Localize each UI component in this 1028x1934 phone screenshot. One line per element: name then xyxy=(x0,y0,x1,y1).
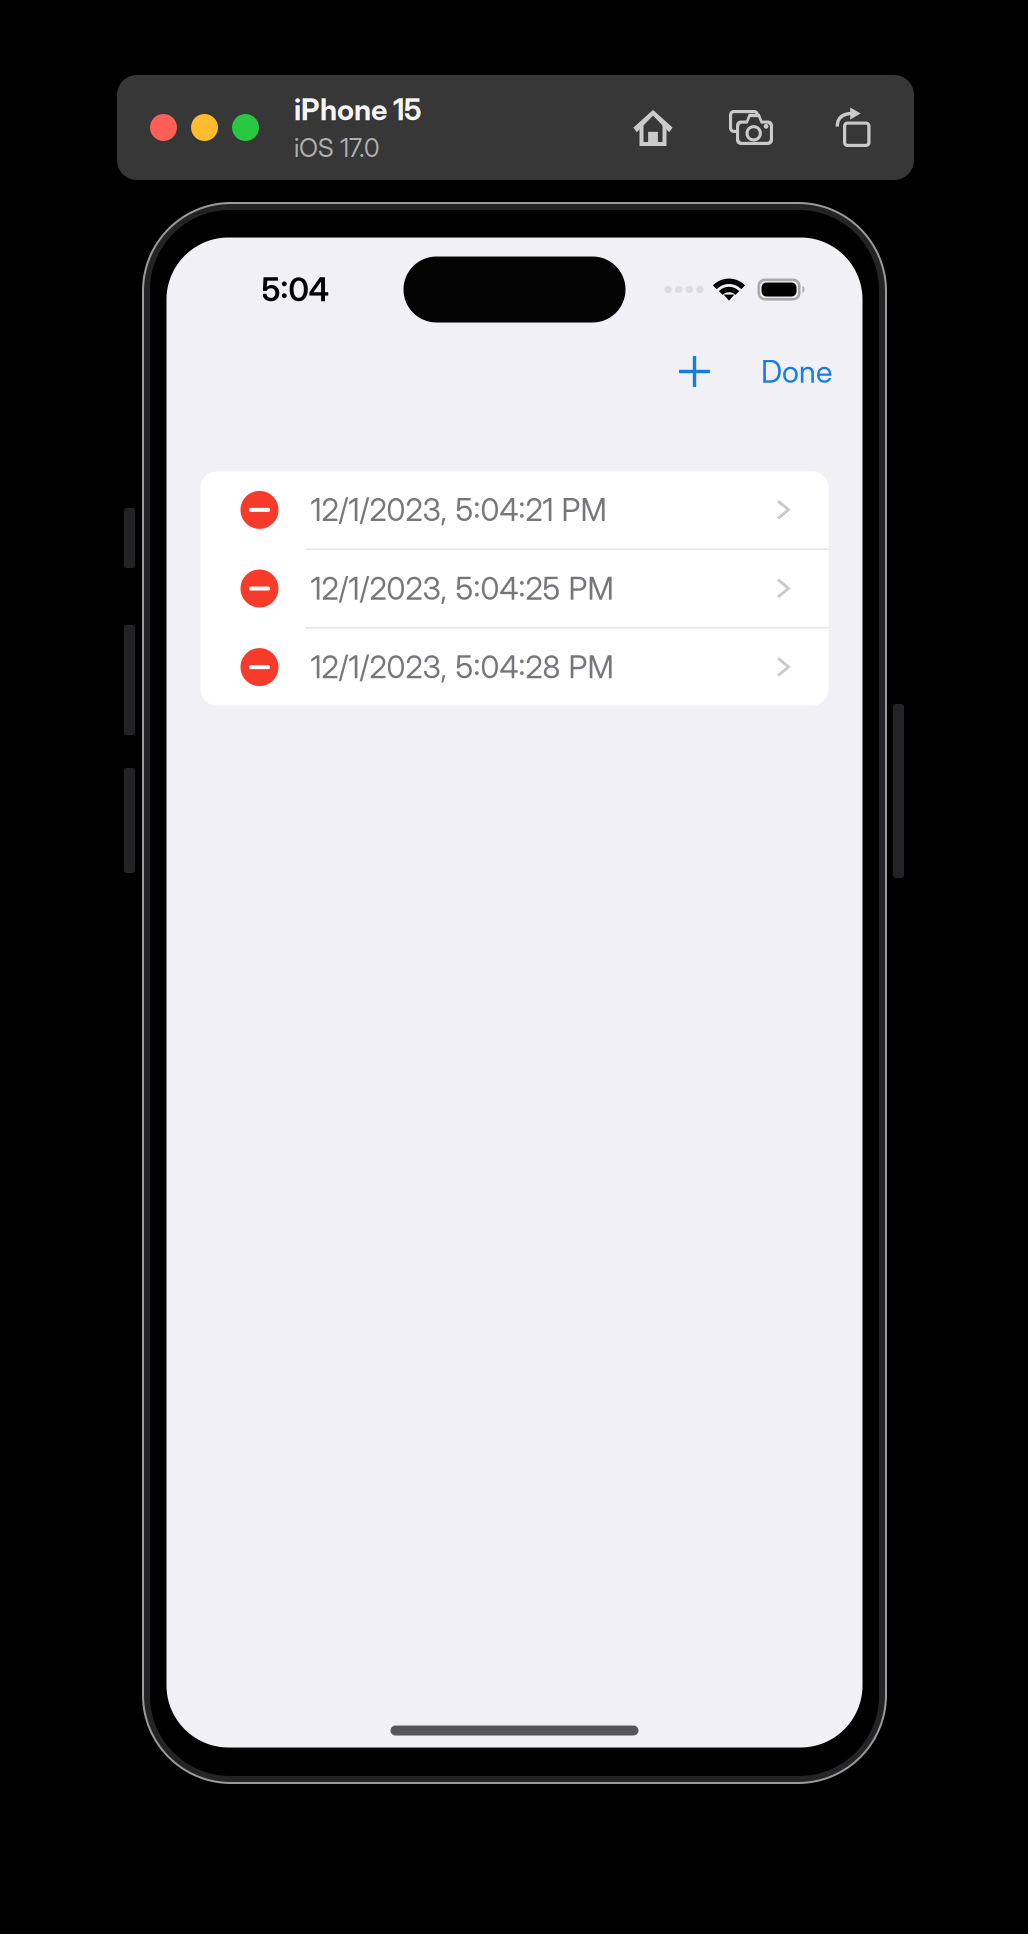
staticText: 5:04 xyxy=(261,270,329,309)
staticText: Done xyxy=(761,353,832,390)
button[interactable]: 12/1/2023, 5:04:21 PM xyxy=(200,471,828,548)
staticText: 12/1/2023, 5:04:28 PM xyxy=(310,648,613,686)
button[interactable]: Screenshot xyxy=(721,97,781,157)
button[interactable]: 12/1/2023, 5:04:25 PM xyxy=(200,550,828,627)
staticText: iPhone 15 xyxy=(294,92,422,127)
button[interactable]: Add xyxy=(663,343,725,399)
button[interactable]: Done xyxy=(758,343,834,399)
button[interactable]: Delete xyxy=(200,629,308,706)
button[interactable]: Delete xyxy=(200,471,308,548)
staticText: iOS 17.0 xyxy=(294,132,380,163)
button[interactable]: Rotate xyxy=(823,97,883,157)
button[interactable]: Delete xyxy=(200,550,308,627)
button[interactable]: 12/1/2023, 5:04:28 PM xyxy=(200,629,828,706)
staticText: 12/1/2023, 5:04:21 PM xyxy=(310,491,606,528)
staticText: 12/1/2023, 5:04:25 PM xyxy=(310,570,613,607)
button[interactable]: Home xyxy=(623,97,683,157)
